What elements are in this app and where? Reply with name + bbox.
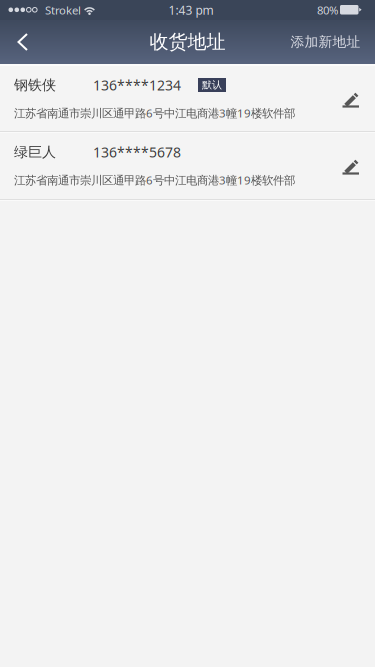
button[interactable]: 钢铁侠 <box>0 66 375 131</box>
staticText: Strokel <box>45 2 81 18</box>
staticText: 收货地址 <box>149 30 225 54</box>
staticText: 1:43 pm <box>168 2 213 18</box>
staticText: 136****1234 <box>93 75 181 95</box>
button[interactable]: 绿巨人 <box>0 133 375 199</box>
staticText: 江苏省南通市崇川区通甲路6号中江电商港3幢19楼软件部 <box>14 172 295 188</box>
staticText: 136****5678 <box>93 142 181 162</box>
button[interactable]: Back <box>0 20 46 64</box>
button[interactable]: 添加新地址 <box>276 20 375 64</box>
staticText: 江苏省南通市崇川区通甲路6号中江电商港3幢19楼软件部 <box>14 105 295 121</box>
staticText: 80% <box>317 2 338 18</box>
staticText: 钢铁侠 <box>14 76 56 94</box>
staticText: 添加新地址 <box>290 33 360 51</box>
staticText: 默认 <box>202 79 222 91</box>
staticText: 绿巨人 <box>14 143 56 161</box>
